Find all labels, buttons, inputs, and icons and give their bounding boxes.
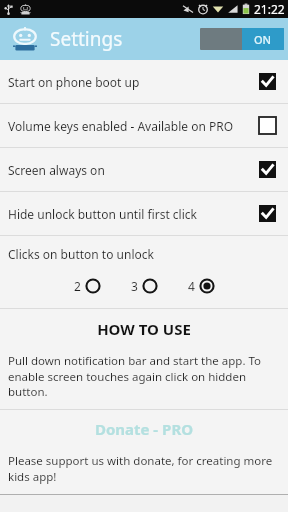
- button[interactable]: Hide unlock button until first click: [0, 192, 288, 235]
- button[interactable]: Start on phone boot up: [0, 60, 288, 103]
- staticText: 2: [74, 278, 81, 294]
- button[interactable]: 3: [127, 274, 162, 298]
- staticText: Volume keys enabled - Available on PRO: [8, 118, 234, 134]
- staticText: 3: [131, 278, 138, 294]
- staticText: Hide unlock button until first click: [8, 206, 197, 222]
- button[interactable]: Screen always on: [0, 148, 288, 191]
- button[interactable]: Service enabled toggle: [200, 28, 284, 50]
- staticText: Donate - PRO: [0, 419, 288, 439]
- button[interactable]: 2: [70, 274, 105, 298]
- staticText: Please support us with donate, for creat…: [8, 453, 280, 484]
- staticText: ON: [254, 32, 272, 47]
- staticText: Pull down notification bar and start the…: [8, 353, 280, 399]
- button[interactable]: Volume keys enabled - Available on PRO: [0, 104, 288, 147]
- button[interactable]: Donate - PRO: [0, 410, 288, 494]
- button[interactable]: 4: [184, 274, 219, 298]
- staticText: HOW TO USE: [0, 319, 288, 339]
- staticText: Start on phone boot up: [8, 74, 140, 90]
- staticText: Screen always on: [8, 162, 105, 178]
- staticText: Settings: [50, 26, 123, 52]
- staticText: 4: [188, 278, 195, 294]
- staticText: Clicks on button to unlock: [8, 246, 154, 262]
- staticText: 21:22: [254, 1, 285, 17]
